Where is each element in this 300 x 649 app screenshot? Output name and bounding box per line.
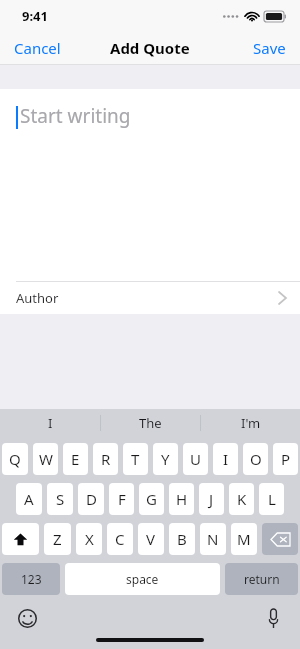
button[interactable]: Y — [153, 443, 178, 475]
staticText: space — [126, 571, 159, 587]
button[interactable]: S — [47, 483, 73, 515]
button[interactable]: F — [109, 483, 134, 515]
button[interactable]: G — [139, 483, 164, 515]
staticText: 123 — [21, 571, 42, 587]
button[interactable]: W — [33, 443, 58, 475]
button[interactable]: L — [259, 483, 284, 515]
button[interactable]: Author — [0, 282, 300, 314]
button[interactable]: B — [169, 523, 195, 555]
staticText: G — [146, 489, 157, 509]
staticText: Q — [9, 449, 21, 469]
staticText: K — [237, 489, 247, 509]
staticText: Z — [53, 529, 62, 549]
button[interactable]: P — [273, 443, 298, 475]
staticText: L — [268, 489, 276, 509]
staticText: F — [118, 489, 126, 509]
staticText: Add Quote — [110, 38, 190, 58]
staticText: P — [281, 449, 291, 469]
button[interactable]: V — [138, 523, 164, 555]
button[interactable]: 123 — [2, 563, 60, 595]
staticText: 9:41 — [22, 7, 48, 25]
staticText: M — [237, 529, 251, 549]
button[interactable]: I — [213, 443, 238, 475]
button[interactable]: M — [231, 523, 257, 555]
staticText: Start writing — [20, 103, 131, 129]
button[interactable]: Z — [44, 523, 71, 555]
staticText: The — [139, 414, 162, 432]
staticText: I'm — [241, 414, 261, 432]
staticText: W — [39, 449, 53, 469]
staticText: U — [190, 449, 201, 469]
staticText: X — [85, 529, 94, 549]
button[interactable]: O — [243, 443, 268, 475]
button[interactable]: A — [16, 483, 42, 515]
staticText: O — [250, 449, 262, 469]
button[interactable]: T — [123, 443, 148, 475]
staticText: Save — [253, 38, 286, 58]
staticText: S — [56, 489, 65, 509]
staticText: C — [115, 529, 125, 549]
staticText: R — [101, 449, 111, 469]
button[interactable]: K — [229, 483, 254, 515]
button[interactable]: space — [65, 563, 220, 595]
staticText: N — [207, 529, 219, 549]
staticText: T — [131, 449, 140, 469]
button[interactable]: I — [0, 409, 100, 437]
button[interactable]: Shift — [2, 523, 39, 555]
button[interactable]: C — [107, 523, 133, 555]
button[interactable]: I'm — [201, 409, 300, 437]
button[interactable]: Backspace — [262, 523, 298, 555]
staticText: return — [244, 571, 280, 587]
button[interactable]: R — [93, 443, 118, 475]
button[interactable]: Emoji keyboard — [12, 603, 42, 633]
staticText: Cancel — [14, 38, 61, 58]
staticText: Y — [161, 449, 170, 469]
staticText: V — [146, 529, 156, 549]
button[interactable]: D — [78, 483, 104, 515]
staticText: I — [223, 449, 229, 469]
staticText: E — [71, 449, 80, 469]
staticText: Author — [16, 289, 59, 307]
staticText: H — [176, 489, 188, 509]
button[interactable]: E — [63, 443, 88, 475]
button[interactable]: The — [101, 409, 200, 437]
button[interactable]: H — [169, 483, 194, 515]
staticText: D — [86, 489, 97, 509]
staticText: I — [48, 414, 53, 432]
button[interactable]: U — [183, 443, 208, 475]
button[interactable]: Cancel — [0, 32, 75, 64]
staticText: A — [24, 489, 34, 509]
button[interactable]: N — [200, 523, 226, 555]
button[interactable]: return — [225, 563, 298, 595]
button[interactable]: J — [199, 483, 224, 515]
staticText: J — [209, 489, 214, 509]
staticText: B — [177, 529, 187, 549]
button[interactable]: Start writing — [0, 89, 300, 281]
button[interactable]: Dictation — [258, 603, 288, 633]
button[interactable]: X — [76, 523, 102, 555]
button[interactable]: Q — [2, 443, 28, 475]
button[interactable]: Save — [239, 32, 300, 64]
